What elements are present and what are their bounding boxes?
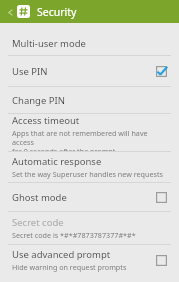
button[interactable]: Access timeout [0,114,179,151]
staticText: Hide warning on request prompts [12,262,127,272]
staticText: Use PIN [12,65,48,78]
staticText: Secret code [12,216,64,229]
button[interactable]: Use PIN [0,56,179,86]
button[interactable]: Use advanced prompt [0,245,179,275]
staticText: Secret code is *#*#7873787377#*#* [12,230,136,240]
staticText: Multi-user mode [12,37,86,50]
button[interactable]: Checked [155,65,168,78]
staticText: Ghost mode [12,191,67,204]
staticText: Access timeout [12,114,80,127]
button[interactable]: Back [3,5,17,19]
button[interactable]: Unchecked [155,254,168,267]
staticText: Apps that are not remembered will have a… [12,128,168,151]
button[interactable]: Automatic response [0,152,179,182]
button[interactable]: Ghost mode [0,183,179,211]
staticText: Set the way Superuser handles new reques… [12,169,163,179]
staticText: Use advanced prompt [12,248,111,261]
button[interactable]: Unchecked [155,191,168,204]
staticText: Automatic response [12,155,102,168]
button[interactable]: Secret code [0,212,179,244]
staticText: Security [37,5,77,19]
staticText: Change PIN [12,94,65,107]
button[interactable]: Change PIN [0,87,179,113]
button[interactable]: Multi-user mode [0,32,179,55]
